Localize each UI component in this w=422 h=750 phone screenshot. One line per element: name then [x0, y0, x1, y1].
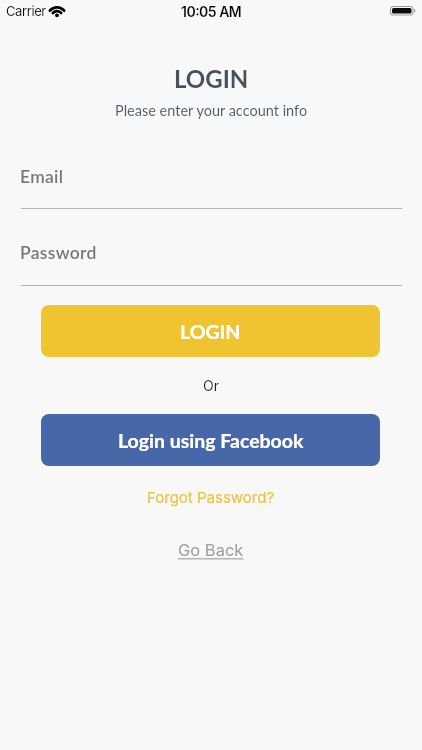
staticText: Or	[203, 377, 219, 394]
button[interactable]: Forgot Password?	[147, 488, 275, 506]
staticText: Please enter your account info	[115, 102, 308, 119]
staticText: Email	[20, 166, 64, 187]
staticText: LOGIN	[174, 64, 249, 93]
button[interactable]: Go Back	[178, 540, 244, 560]
staticText: 10:05 AM	[181, 3, 242, 20]
button[interactable]: LOGIN	[41, 305, 380, 357]
staticText: Carrier	[6, 3, 46, 19]
staticText: Password	[20, 242, 97, 263]
button[interactable]: Login using Facebook	[41, 414, 380, 466]
staticText: Login using Facebook	[118, 429, 304, 452]
staticText: LOGIN	[180, 320, 241, 343]
